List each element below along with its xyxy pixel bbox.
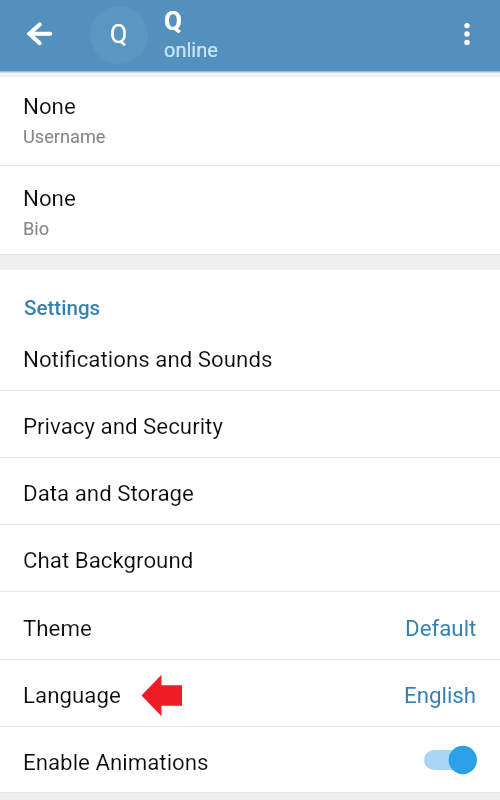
staticText: Notifications and Sounds [23,346,273,372]
staticText: Default [405,615,477,641]
button[interactable]: More options [439,6,495,62]
button[interactable]: None [0,166,500,255]
button[interactable]: None [0,71,500,166]
button[interactable]: Theme [0,592,500,660]
button[interactable]: Notifications and Sounds [0,324,500,391]
button[interactable]: Data and Storage [0,458,500,525]
staticText: online [164,38,218,61]
staticText: Chat Background [23,547,194,573]
button[interactable]: Chat Background [0,525,500,592]
staticText: Data and Storage [23,480,194,506]
staticText: English [404,682,477,708]
staticText: Settings [24,296,101,320]
button[interactable]: Enable Animations [0,727,500,793]
staticText: Username [23,126,106,147]
staticText: Theme [23,615,92,641]
button[interactable]: Back [12,5,68,61]
button[interactable]: Language [0,660,500,727]
staticText: None [23,93,76,119]
staticText: Q [164,6,182,36]
button[interactable]: Profile photo [90,6,148,64]
button[interactable]: Privacy and Security [0,391,500,458]
button[interactable]: Enable Animations toggle [423,744,477,776]
staticText: Bio [23,218,50,239]
staticText: Enable Animations [23,749,209,775]
staticText: Privacy and Security [23,413,223,439]
staticText: Language [23,682,121,708]
staticText: None [23,185,76,211]
staticText: Q [110,20,128,49]
